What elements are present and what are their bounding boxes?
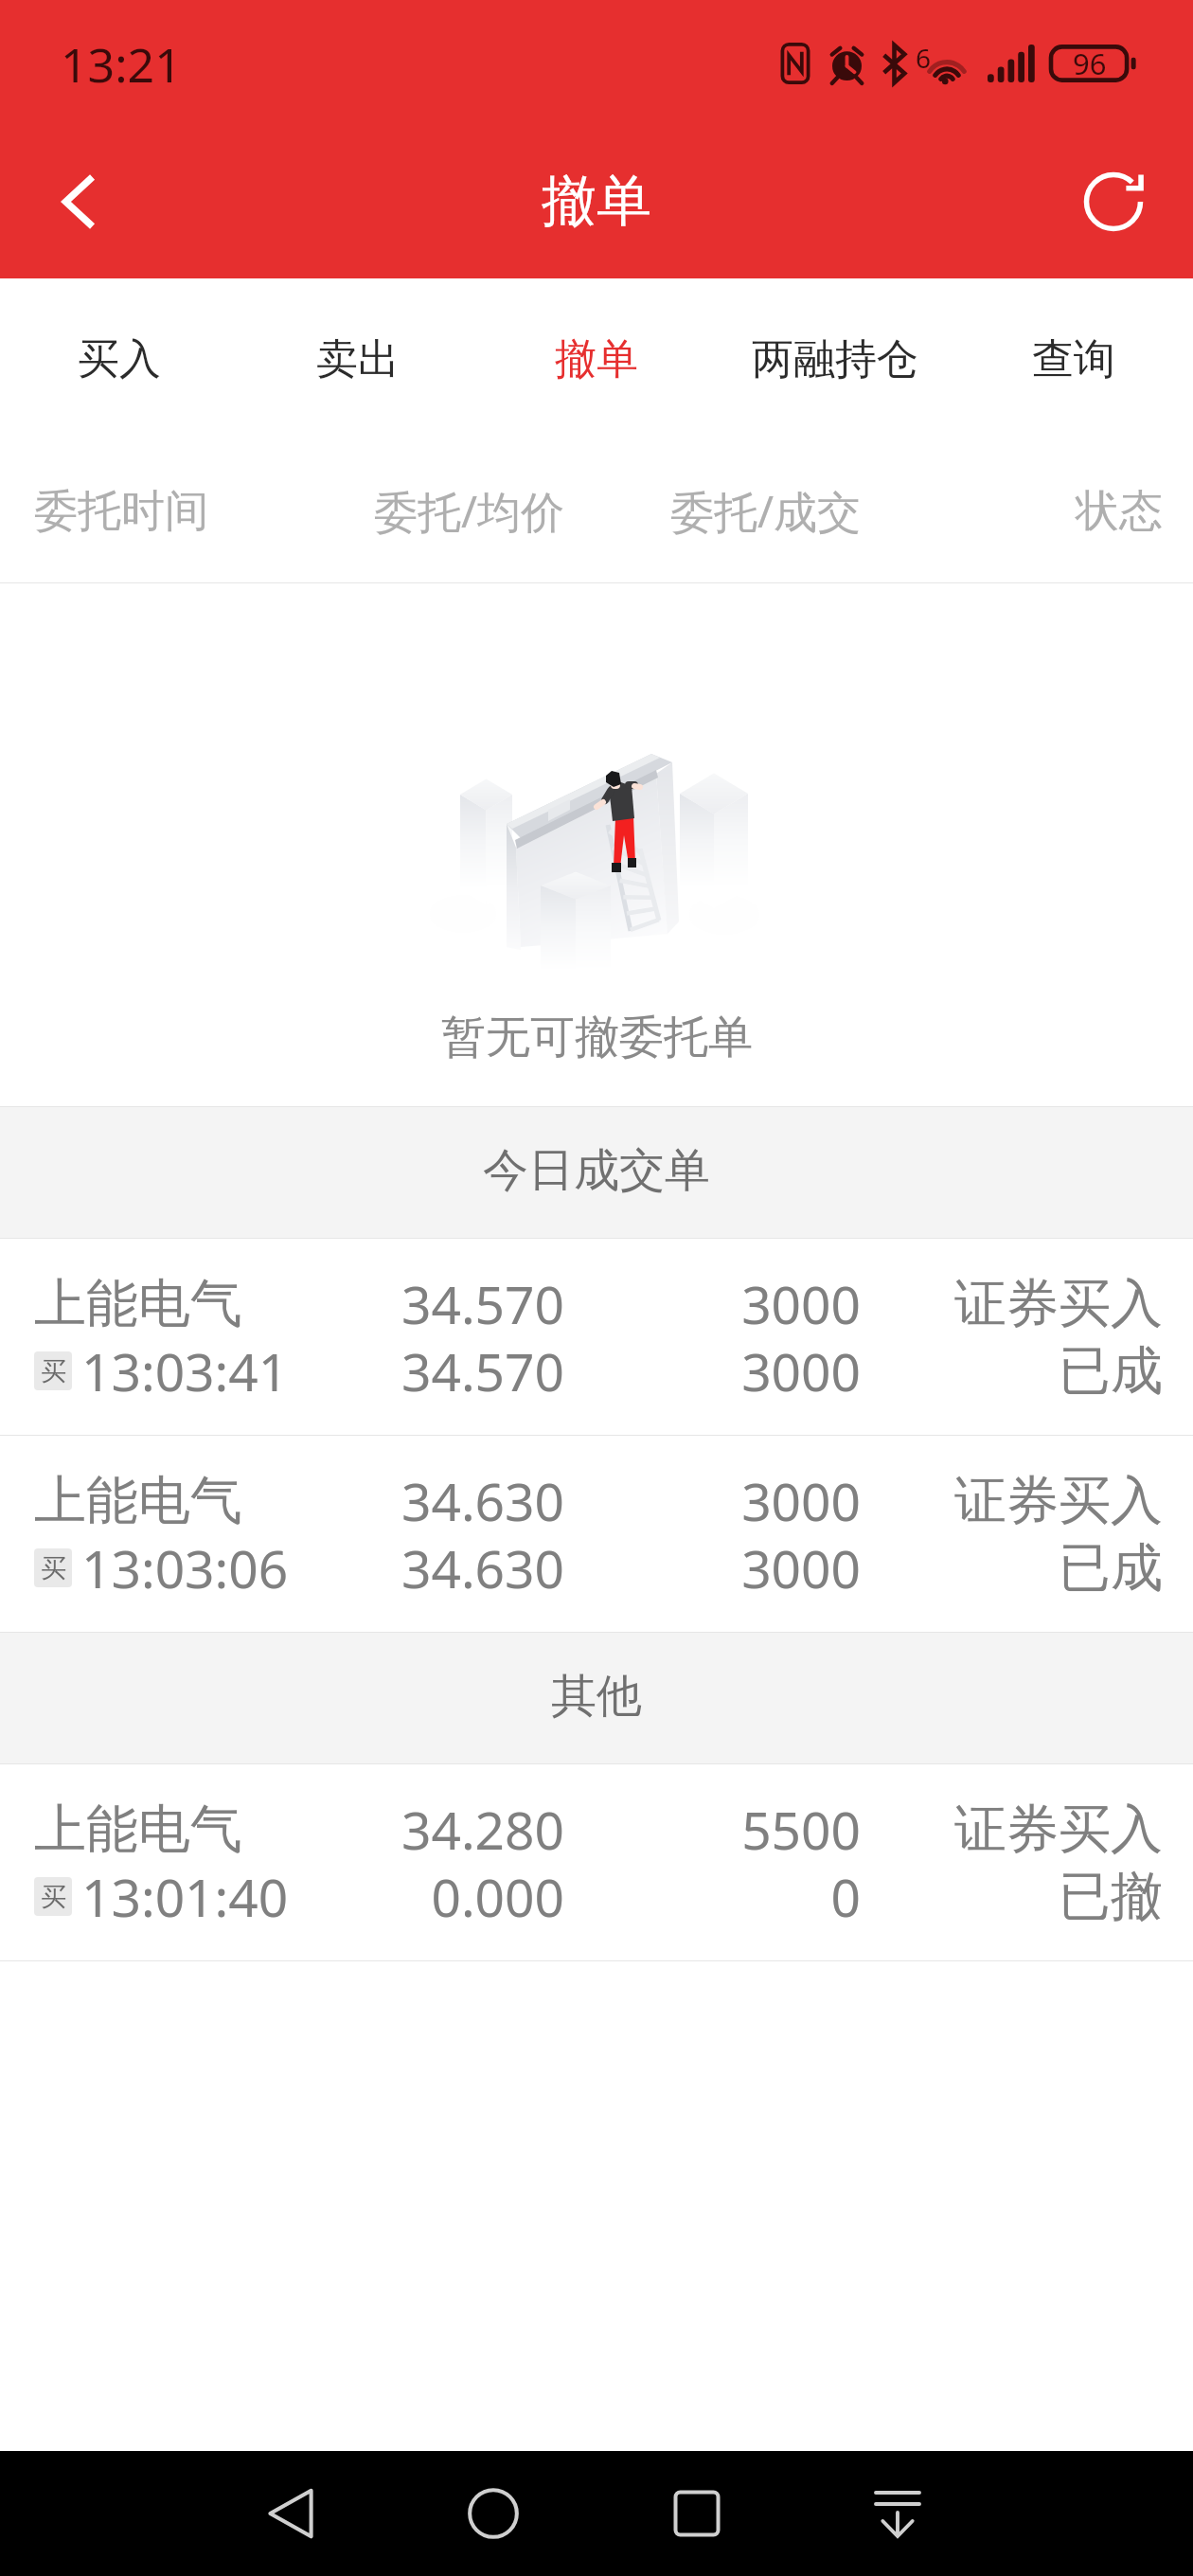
staticText: 6 (916, 40, 932, 76)
staticText: 卖出 (316, 333, 400, 385)
button[interactable]: Hide keyboard (855, 2471, 940, 2556)
button[interactable]: 卖出 (239, 278, 477, 440)
staticText: 委托时间 (34, 484, 290, 539)
button[interactable]: Refresh (1051, 124, 1193, 278)
staticText: 买 (41, 1552, 66, 1584)
staticText: 34.630 (290, 1532, 564, 1603)
staticText: 3000 (564, 1532, 861, 1603)
staticText: 上能电气 (34, 1271, 290, 1336)
staticText: 34.280 (290, 1794, 564, 1865)
button[interactable]: 上能电气 (0, 1764, 1193, 1960)
button[interactable]: Back (248, 2471, 333, 2556)
staticText: 状态 (861, 484, 1163, 539)
staticText: 证券买入 (861, 1797, 1163, 1862)
staticText: 买 (41, 1355, 66, 1387)
button[interactable]: Home (451, 2471, 536, 2556)
staticText: 买入 (78, 333, 161, 385)
button[interactable]: 上能电气 (0, 1436, 1193, 1632)
staticText: 13:03:41 (81, 1335, 289, 1406)
staticText: 96 (1073, 44, 1107, 83)
button[interactable]: Back (0, 124, 142, 278)
staticText: 上能电气 (34, 1797, 290, 1862)
staticText: 13:21 (61, 32, 182, 97)
staticText: 撤单 (555, 333, 638, 385)
button[interactable]: 撤单 (477, 278, 716, 440)
staticText: 3000 (564, 1465, 861, 1536)
staticText: 上能电气 (34, 1468, 290, 1533)
staticText: 今日成交单 (483, 1142, 710, 1199)
staticText: 已撤 (861, 1864, 1163, 1929)
staticText: 已成 (861, 1338, 1163, 1404)
staticText: 买 (41, 1881, 66, 1913)
staticText: 其他 (551, 1668, 642, 1725)
staticText: 13:03:06 (81, 1532, 289, 1603)
staticText: 证券买入 (861, 1271, 1163, 1336)
staticText: 暂无可撤委托单 (441, 1010, 753, 1065)
staticText: 两融持仓 (752, 333, 918, 385)
staticText: 34.630 (290, 1465, 564, 1536)
staticText: 已成 (861, 1535, 1163, 1601)
staticText: 委托/均价 (290, 481, 564, 541)
button[interactable]: 买入 (0, 278, 239, 440)
button[interactable]: 上能电气 (0, 1239, 1193, 1435)
staticText: 3000 (564, 1268, 861, 1339)
staticText: 委托/成交 (564, 481, 861, 541)
staticText: 撤单 (542, 167, 651, 236)
staticText: 3000 (564, 1335, 861, 1406)
staticText: 13:01:40 (81, 1861, 289, 1932)
staticText: 5500 (564, 1794, 861, 1865)
staticText: 查询 (1032, 333, 1115, 385)
button[interactable]: 两融持仓 (716, 278, 954, 440)
button[interactable]: 查询 (954, 278, 1193, 440)
staticText: 34.570 (290, 1268, 564, 1339)
staticText: 0.000 (290, 1861, 564, 1932)
staticText: 0 (564, 1861, 861, 1932)
button[interactable]: Recent apps (654, 2471, 739, 2556)
staticText: 证券买入 (861, 1468, 1163, 1533)
staticText: 34.570 (290, 1335, 564, 1406)
